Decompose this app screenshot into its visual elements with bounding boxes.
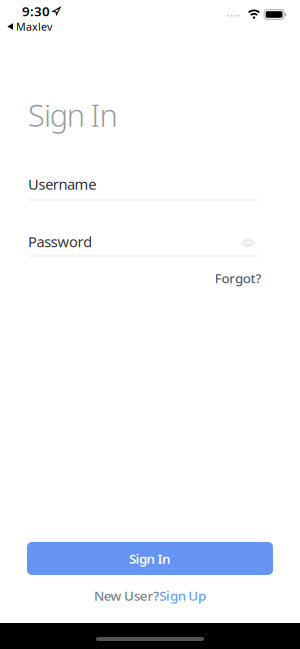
button[interactable]: Sign In [27,542,273,575]
staticText: Password [28,232,92,251]
button[interactable]: Forgot? [215,269,261,287]
staticText: 9:30 [22,2,50,20]
button[interactable]: Show password [242,239,254,247]
staticText: New User? [94,587,159,604]
staticText: Sign In [129,550,171,567]
staticText: Sign Up [159,587,206,604]
button[interactable]: Maxlev [0,19,300,34]
staticText: Forgot? [215,269,261,287]
staticText: Username [28,174,96,194]
staticText: Maxlev [16,19,52,34]
staticText: Sign In [28,94,117,135]
button[interactable]: Sign Up [159,587,206,604]
